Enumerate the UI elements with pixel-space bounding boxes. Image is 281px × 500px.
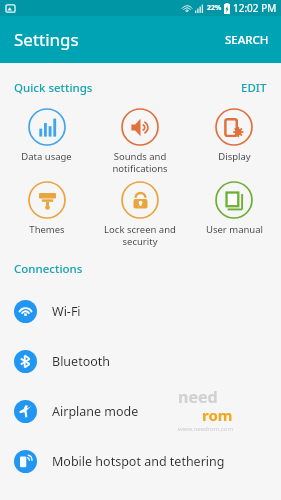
staticText: Airplane mode bbox=[52, 403, 139, 420]
button[interactable]: SEARCH bbox=[213, 20, 281, 60]
button[interactable]: Sounds and notifications bbox=[93, 108, 187, 175]
staticText: Lock screen and security bbox=[104, 223, 176, 248]
staticText: Themes bbox=[29, 223, 65, 236]
button[interactable]: User manual bbox=[187, 181, 281, 236]
staticText: Connections bbox=[14, 261, 83, 277]
staticText: Settings bbox=[14, 28, 79, 51]
staticText: EDIT bbox=[241, 80, 267, 96]
staticText: 12:02 PM bbox=[233, 1, 277, 15]
staticText: www.needrom.com bbox=[178, 425, 234, 433]
button[interactable]: Data usage bbox=[0, 108, 93, 163]
staticText: Quick settings bbox=[14, 80, 93, 96]
staticText: SEARCH bbox=[225, 32, 269, 48]
staticText: Wi-Fi bbox=[52, 303, 81, 320]
button[interactable]: Themes bbox=[0, 181, 93, 236]
button[interactable]: Lock screen and security bbox=[93, 181, 187, 248]
button[interactable]: Wi-Fi bbox=[0, 286, 281, 336]
button[interactable]: Airplane mode bbox=[0, 386, 281, 436]
button[interactable]: Display bbox=[187, 108, 281, 163]
staticText: Display bbox=[218, 150, 251, 163]
staticText: Sounds and notifications bbox=[112, 150, 168, 175]
staticText: Data usage bbox=[21, 150, 72, 163]
button[interactable]: Mobile hotspot and tethering bbox=[0, 436, 281, 486]
staticText: Bluetooth bbox=[52, 353, 111, 370]
staticText: need bbox=[178, 386, 218, 408]
staticText: User manual bbox=[206, 223, 263, 236]
staticText: rom bbox=[202, 405, 233, 425]
staticText: 22% bbox=[207, 3, 222, 13]
button[interactable]: EDIT bbox=[237, 76, 271, 100]
button[interactable]: Bluetooth bbox=[0, 336, 281, 386]
staticText: Mobile hotspot and tethering bbox=[52, 453, 225, 470]
